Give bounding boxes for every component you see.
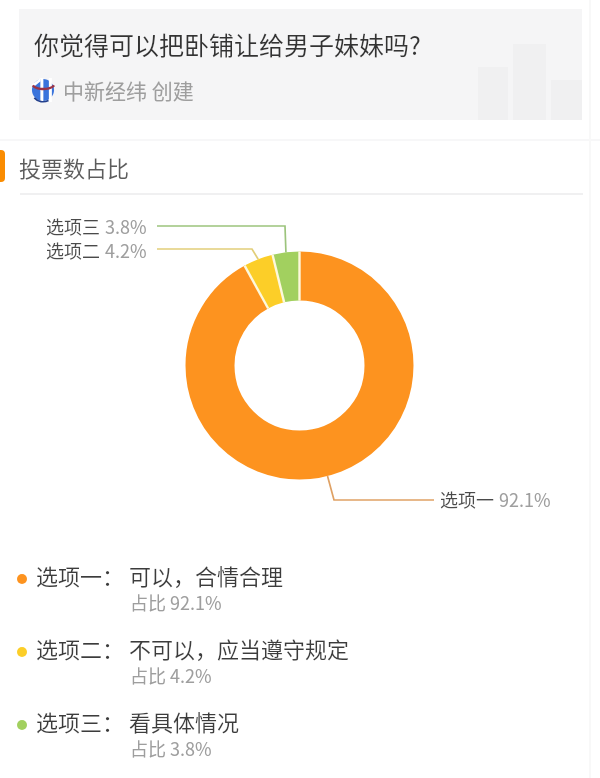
staticText: 选项三： xyxy=(36,705,125,737)
button[interactable]: 选项三： xyxy=(0,703,600,773)
staticText: 占比 92.1% xyxy=(130,589,222,615)
button[interactable]: 你觉得可以把卧铺让给男子妹妹吗? xyxy=(19,9,582,120)
staticText: 选项三 xyxy=(46,213,100,239)
staticText: 选项一 xyxy=(440,486,494,512)
staticText: 3.8% xyxy=(105,213,147,239)
staticText: 看具体情况 xyxy=(129,705,240,737)
staticText: 不可以，应当遵守规定 xyxy=(129,632,350,664)
staticText: 选项二 xyxy=(46,237,100,263)
staticText: 占比 3.8% xyxy=(130,735,212,761)
staticText: 选项二： xyxy=(36,632,125,664)
other: 中新经纬 xyxy=(31,78,55,102)
button[interactable]: 选项一： xyxy=(0,557,600,627)
staticText: 92.1% xyxy=(499,486,551,512)
staticText: 你觉得可以把卧铺让给男子妹妹吗? xyxy=(34,26,421,62)
button[interactable]: 选项二： xyxy=(0,630,600,700)
staticText: 投票数占比 xyxy=(19,151,130,183)
staticText: 可以，合情合理 xyxy=(129,559,284,591)
staticText: 选项一： xyxy=(36,559,125,591)
staticText: 中新经纬 创建 xyxy=(63,75,194,105)
staticText: 4.2% xyxy=(105,237,147,263)
staticText: 占比 4.2% xyxy=(130,662,212,688)
